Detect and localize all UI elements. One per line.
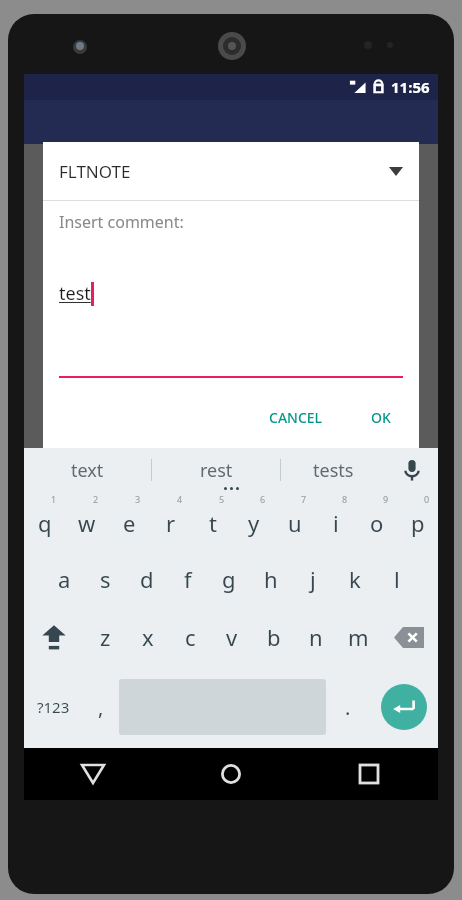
button[interactable]: Shift: [24, 608, 84, 666]
staticText: b: [267, 622, 281, 652]
staticText: 4: [177, 493, 183, 505]
staticText: 9: [383, 493, 389, 505]
staticText: z: [100, 622, 111, 652]
button[interactable]: g: [208, 550, 250, 608]
staticText: l: [394, 564, 400, 594]
staticText: 5: [219, 493, 225, 505]
staticText: k: [349, 564, 361, 594]
staticText: CANCEL: [269, 408, 323, 427]
button[interactable]: l: [376, 550, 418, 608]
button[interactable]: text: [24, 448, 151, 492]
staticText: 1: [51, 493, 57, 505]
button[interactable]: v: [211, 608, 253, 666]
staticText: FLTNOTE: [59, 160, 131, 183]
staticText: g: [222, 564, 236, 594]
staticText: s: [100, 564, 111, 594]
staticText: ?123: [37, 697, 70, 717]
button[interactable]: Home: [162, 748, 300, 800]
staticText: 7: [301, 493, 307, 505]
button[interactable]: Backspace: [379, 608, 438, 666]
button[interactable]: 5: [192, 492, 233, 550]
staticText: f: [184, 564, 192, 594]
staticText: 3: [135, 493, 141, 505]
staticText: m: [348, 622, 369, 652]
staticText: test: [59, 281, 91, 306]
staticText: Insert comment:: [59, 211, 184, 233]
staticText: p: [411, 508, 425, 538]
button[interactable]: j: [292, 550, 334, 608]
staticText: u: [288, 508, 302, 538]
button[interactable]: OK: [357, 398, 405, 437]
staticText: r: [166, 508, 176, 538]
button[interactable]: z: [84, 608, 127, 666]
button[interactable]: .: [326, 666, 370, 748]
button[interactable]: h: [250, 550, 292, 608]
staticText: rest: [200, 458, 233, 483]
button[interactable]: 4: [150, 492, 192, 550]
staticText: j: [310, 564, 316, 594]
staticText: d: [140, 564, 154, 594]
button[interactable]: f: [167, 550, 208, 608]
button[interactable]: 3: [108, 492, 150, 550]
staticText: w: [78, 508, 96, 538]
staticText: 8: [342, 493, 348, 505]
staticText: h: [264, 564, 278, 594]
staticText: y: [248, 508, 260, 538]
staticText: e: [123, 508, 136, 538]
button[interactable]: s: [85, 550, 126, 608]
button[interactable]: FLTNOTE: [43, 142, 419, 200]
staticText: x: [142, 622, 154, 652]
button[interactable]: rest: [152, 448, 280, 492]
staticText: o: [370, 508, 384, 538]
button[interactable]: 0: [397, 492, 438, 550]
button[interactable]: 2: [66, 492, 108, 550]
button[interactable]: a: [44, 550, 85, 608]
staticText: 6: [260, 493, 266, 505]
button[interactable]: 8: [315, 492, 356, 550]
button[interactable]: b: [253, 608, 295, 666]
button[interactable]: Enter: [381, 684, 427, 730]
staticText: 11:56: [391, 77, 430, 97]
button[interactable]: Recents: [300, 748, 438, 800]
button[interactable]: Back: [24, 748, 162, 800]
button[interactable]: x: [127, 608, 169, 666]
button[interactable]: n: [295, 608, 337, 666]
staticText: t: [209, 508, 217, 538]
staticText: c: [185, 622, 196, 652]
button[interactable]: 6: [233, 492, 274, 550]
button[interactable]: CANCEL: [255, 398, 337, 437]
staticText: .: [345, 694, 351, 721]
button[interactable]: 7: [274, 492, 315, 550]
button[interactable]: ?123: [24, 666, 83, 748]
staticText: q: [38, 508, 52, 538]
staticText: text: [71, 458, 104, 483]
button[interactable]: ,: [83, 666, 119, 748]
staticText: i: [333, 508, 339, 538]
button[interactable]: k: [334, 550, 376, 608]
staticText: v: [226, 622, 238, 652]
staticText: 2: [93, 493, 99, 505]
staticText: ,: [98, 694, 104, 721]
button[interactable]: 9: [356, 492, 397, 550]
staticText: n: [309, 622, 323, 652]
button[interactable]: c: [169, 608, 211, 666]
button[interactable]: tests: [281, 448, 386, 492]
button[interactable]: m: [337, 608, 379, 666]
staticText: 0: [424, 493, 430, 505]
button[interactable]: Voice input: [386, 448, 438, 492]
staticText: tests: [313, 458, 354, 483]
button[interactable]: d: [126, 550, 167, 608]
staticText: OK: [371, 408, 391, 427]
button[interactable]: Insert comment:: [43, 201, 419, 386]
staticText: a: [58, 564, 71, 594]
button[interactable]: 1: [24, 492, 66, 550]
